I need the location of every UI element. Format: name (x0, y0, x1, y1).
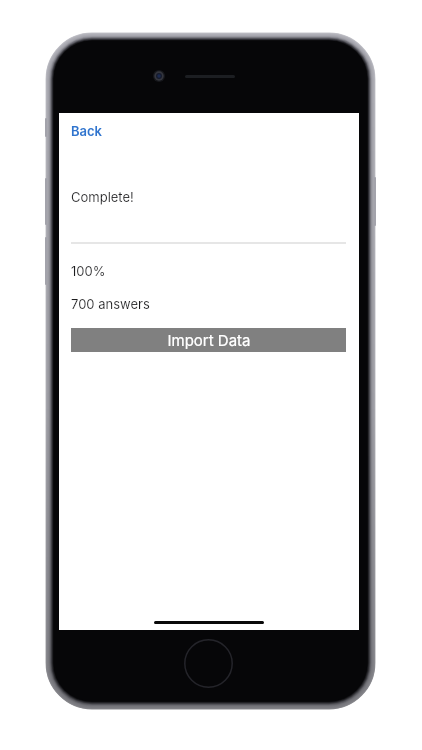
staticText: Import Data (167, 331, 251, 349)
staticText: 700 answers (71, 296, 150, 312)
staticText: Complete! (71, 189, 134, 205)
button[interactable]: Back (69, 122, 107, 140)
staticText: 100% (71, 263, 106, 279)
button[interactable]: Home (184, 639, 233, 688)
other: Front camera (153, 70, 165, 82)
staticText: Back (71, 123, 103, 139)
button[interactable]: Import Data (71, 328, 346, 352)
